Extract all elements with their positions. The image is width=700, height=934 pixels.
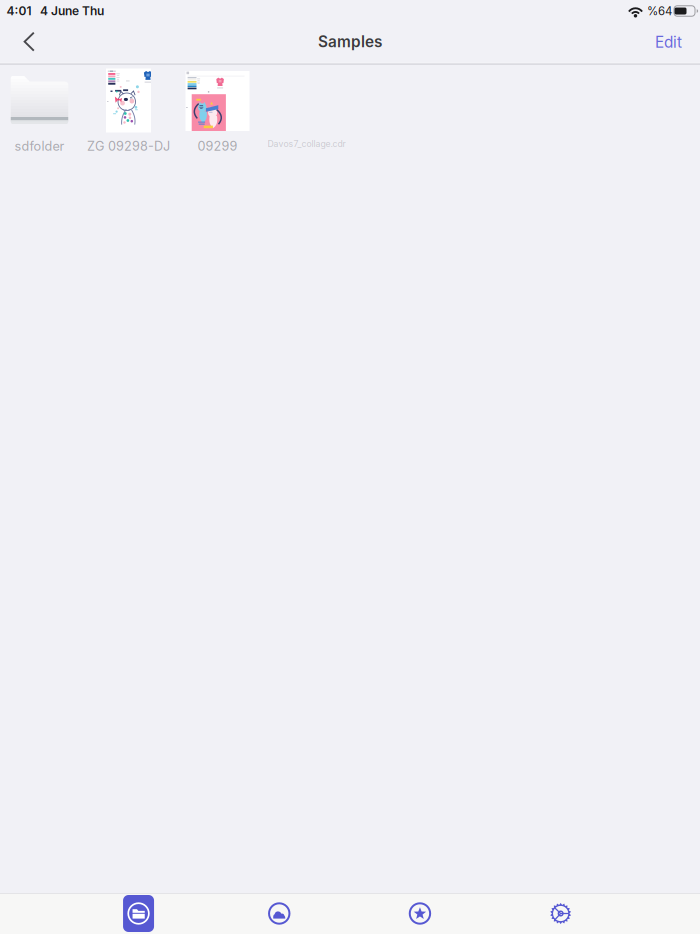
button[interactable]: Files — [68, 893, 209, 934]
button[interactable]: Cloud — [209, 893, 350, 934]
staticText: Davos7_collage.cdr — [267, 138, 345, 149]
staticText: Edit — [655, 33, 682, 52]
staticText: ZG 09298-DJ — [87, 138, 170, 154]
button[interactable]: Settings — [490, 893, 631, 934]
button[interactable]: sdfolder — [0, 64, 84, 160]
staticText: %64 — [647, 4, 672, 18]
button[interactable]: Edit — [637, 24, 700, 63]
button[interactable]: Favourites — [350, 893, 490, 934]
button[interactable]: ZG 09298-DJ — [84, 64, 173, 160]
staticText: 4 June Thu — [40, 4, 104, 18]
button[interactable]: Back — [0, 23, 51, 63]
staticText: sdfolder — [14, 138, 64, 154]
button[interactable]: 09299 — [173, 64, 262, 160]
button[interactable]: Davos7_collage.cdr — [262, 64, 351, 160]
staticText: 4:01 — [7, 4, 32, 18]
staticText: 09299 — [197, 138, 237, 154]
staticText: Samples — [318, 32, 382, 51]
